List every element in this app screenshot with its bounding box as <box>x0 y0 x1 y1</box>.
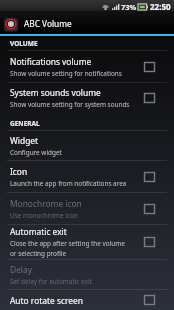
staticText: ABC Volume <box>24 18 72 29</box>
button[interactable]: Toggle System sounds volume <box>144 93 155 103</box>
button[interactable]: Toggle Automatic exit <box>144 237 155 247</box>
button[interactable]: Toggle Auto rotate screen <box>144 295 155 305</box>
staticText: Launch the app from notifications area <box>10 179 127 188</box>
button[interactable]: Notifications volume <box>0 51 174 82</box>
button[interactable]: Delay <box>0 260 174 289</box>
button[interactable]: System sounds volume <box>0 83 174 113</box>
staticText: Set delay for automatic exit <box>10 277 92 286</box>
staticText: Auto rotate screen <box>10 295 83 306</box>
button[interactable]: Toggle Icon <box>144 172 155 182</box>
staticText: Show volume setting for system sounds <box>10 100 130 109</box>
staticText: Delay <box>10 264 33 275</box>
staticText: VOLUME <box>10 39 38 48</box>
staticText: GENERAL <box>10 119 40 128</box>
button[interactable]: Automatic exit <box>0 225 174 259</box>
staticText: Notifications volume <box>10 56 92 67</box>
staticText: Icon <box>10 166 28 177</box>
button[interactable]: Monochrome icon <box>0 193 174 224</box>
button[interactable]: ABC Volume <box>0 13 174 34</box>
staticText: Close the app after setting the volume <box>10 239 125 248</box>
staticText: System sounds volume <box>10 87 101 98</box>
staticText: Use monochrome icon <box>10 211 78 220</box>
button[interactable]: Widget <box>0 131 174 160</box>
staticText: or selecting profile <box>10 249 67 258</box>
staticText: 73% <box>121 2 137 12</box>
button[interactable]: Auto rotate screen <box>0 290 174 310</box>
button[interactable]: Toggle Monochrome icon <box>144 204 155 214</box>
staticText: Monochrome icon <box>10 198 82 209</box>
button[interactable]: Icon <box>0 161 174 192</box>
staticText: 22:50 <box>150 1 171 12</box>
staticText: Automatic exit <box>10 226 67 237</box>
staticText: Configure widget <box>10 148 62 157</box>
button[interactable]: Toggle Notifications volume <box>144 62 155 72</box>
staticText: Widget <box>10 135 39 146</box>
staticText: Show volume setting for notifications <box>10 69 122 78</box>
